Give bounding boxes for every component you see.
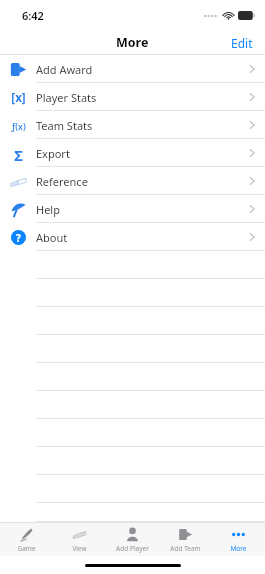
staticText: ƒ(x)	[11, 120, 26, 132]
button[interactable]: Game	[0, 523, 53, 556]
button[interactable]: ?	[0, 223, 265, 251]
staticText: Edit	[231, 35, 253, 51]
button[interactable]: Reference	[0, 167, 265, 195]
staticText: More	[230, 544, 247, 553]
staticText: About	[36, 230, 68, 245]
button[interactable]: Edit	[219, 31, 265, 55]
staticText: Add Player	[116, 544, 149, 553]
button[interactable]: ƒ(x)	[0, 111, 265, 139]
button[interactable]: View	[53, 523, 106, 556]
staticText: More	[116, 34, 149, 51]
button[interactable]: Help	[0, 195, 265, 223]
button[interactable]: [x]	[0, 83, 265, 111]
staticText: Add Award	[36, 62, 93, 77]
button[interactable]: Add Award	[0, 55, 265, 83]
other: More	[231, 527, 246, 542]
staticText: Help	[36, 202, 60, 217]
staticText: Game	[17, 544, 36, 553]
staticText: View	[72, 544, 87, 553]
button[interactable]: More	[212, 523, 265, 556]
staticText: ?	[16, 231, 21, 245]
staticText: Reference	[36, 174, 88, 189]
staticText: Team Stats	[36, 118, 93, 133]
button[interactable]: Add Player	[106, 523, 159, 556]
staticText: 6:42	[22, 8, 44, 23]
button[interactable]: Add Team	[159, 523, 212, 556]
staticText: Export	[36, 146, 70, 161]
staticText: Add Team	[170, 544, 201, 553]
button[interactable]: Σ	[0, 139, 265, 167]
staticText: [x]	[11, 90, 26, 106]
staticText: Player Stats	[36, 90, 97, 105]
staticText: Σ	[14, 145, 23, 162]
